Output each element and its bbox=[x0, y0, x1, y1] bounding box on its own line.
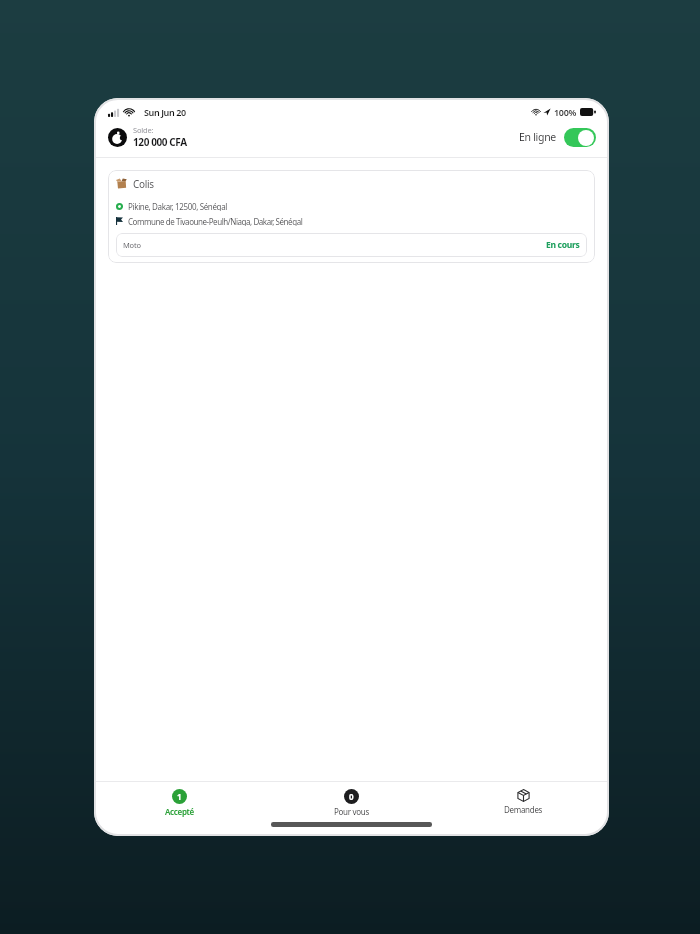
button[interactable]: 1 bbox=[94, 789, 265, 817]
staticText: 100% bbox=[554, 106, 577, 118]
staticText: Demandes bbox=[504, 804, 543, 815]
staticText: Commune de Tivaoune-Peulh/Niaga, Dakar, … bbox=[128, 216, 303, 226]
button[interactable] bbox=[564, 128, 596, 147]
staticText: 0 bbox=[349, 791, 354, 802]
staticText: Moto bbox=[123, 240, 141, 250]
staticText: 1 bbox=[177, 791, 182, 802]
button[interactable]: 0 bbox=[265, 789, 437, 817]
staticText: Accepté bbox=[165, 806, 194, 817]
staticText: 120 000 CFA bbox=[133, 135, 187, 149]
staticText: Pour vous bbox=[334, 806, 369, 817]
staticText: En cours bbox=[546, 239, 580, 251]
button[interactable]: Colis bbox=[108, 170, 595, 263]
button[interactable]: Demandes bbox=[437, 789, 609, 815]
staticText: Colis bbox=[133, 177, 154, 189]
staticText: En ligne bbox=[519, 130, 556, 144]
staticText: Solde: bbox=[133, 125, 154, 135]
staticText: Sun Jun 20 bbox=[144, 106, 186, 118]
staticText: Pikine, Dakar, 12500, Sénégal bbox=[128, 201, 228, 211]
